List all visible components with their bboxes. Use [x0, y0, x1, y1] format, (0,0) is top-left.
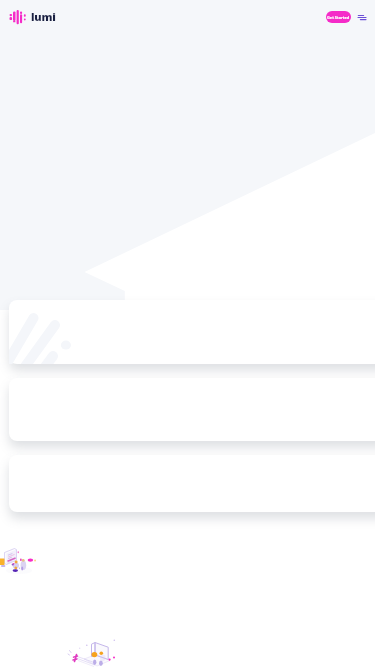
staticText: Get Started [327, 15, 350, 20]
button[interactable]: lumi [9, 9, 56, 24]
button[interactable]: Menu [355, 9, 368, 25]
button[interactable]: Get Started [326, 11, 351, 23]
staticText: lumi [31, 9, 56, 24]
